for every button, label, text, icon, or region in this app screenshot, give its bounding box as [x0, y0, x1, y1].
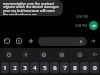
- staticText: 4: [33, 64, 37, 72]
- button[interactable]: 7: [60, 62, 69, 73]
- button[interactable]: More options: [88, 48, 100, 61]
- button[interactable]: Settings: [34, 48, 52, 61]
- staticText: 7: [63, 64, 67, 72]
- button[interactable]: representative over the contract regions…: [0, 0, 63, 16]
- button[interactable]: Gallery: [3, 37, 11, 45]
- button[interactable]: 0: [90, 62, 99, 73]
- button[interactable]: Voice input: [38, 37, 87, 46]
- button[interactable]: 9: [80, 62, 89, 73]
- staticText: 6: [53, 64, 57, 72]
- button[interactable]: ok: [89, 21, 98, 30]
- button[interactable]: 2: [10, 62, 19, 73]
- button[interactable]: Emoji: [0, 48, 17, 61]
- staticText: 8: [73, 64, 77, 72]
- staticText: 1: [3, 64, 7, 72]
- staticText: 5: [43, 64, 47, 72]
- button[interactable]: 8: [70, 62, 79, 73]
- button[interactable]: Send: [89, 37, 97, 45]
- button[interactable]: Translate: [52, 48, 70, 61]
- button[interactable]: Clipboard: [70, 48, 88, 61]
- staticText: representative over the contract regions…: [3, 1, 60, 15]
- staticText: 0: [93, 64, 97, 72]
- staticText: 9: [83, 64, 87, 72]
- button[interactable]: Voice input: [78, 39, 84, 45]
- button[interactable]: Add attachment: [27, 37, 35, 45]
- button[interactable]: 1: [1, 62, 9, 73]
- button[interactable]: 6: [50, 62, 59, 73]
- button[interactable]: 5: [40, 62, 49, 73]
- button[interactable]: Stickers: [15, 37, 23, 45]
- staticText: 2: [13, 64, 17, 72]
- staticText: 3: [23, 64, 27, 72]
- staticText: 4:08 PM: [75, 24, 87, 28]
- staticText: 4:06 PM: [76, 15, 88, 19]
- button[interactable]: 3: [20, 62, 29, 73]
- button[interactable]: Voice typing: [17, 48, 34, 61]
- button[interactable]: 4: [30, 62, 39, 73]
- staticText: ok: [92, 24, 96, 28]
